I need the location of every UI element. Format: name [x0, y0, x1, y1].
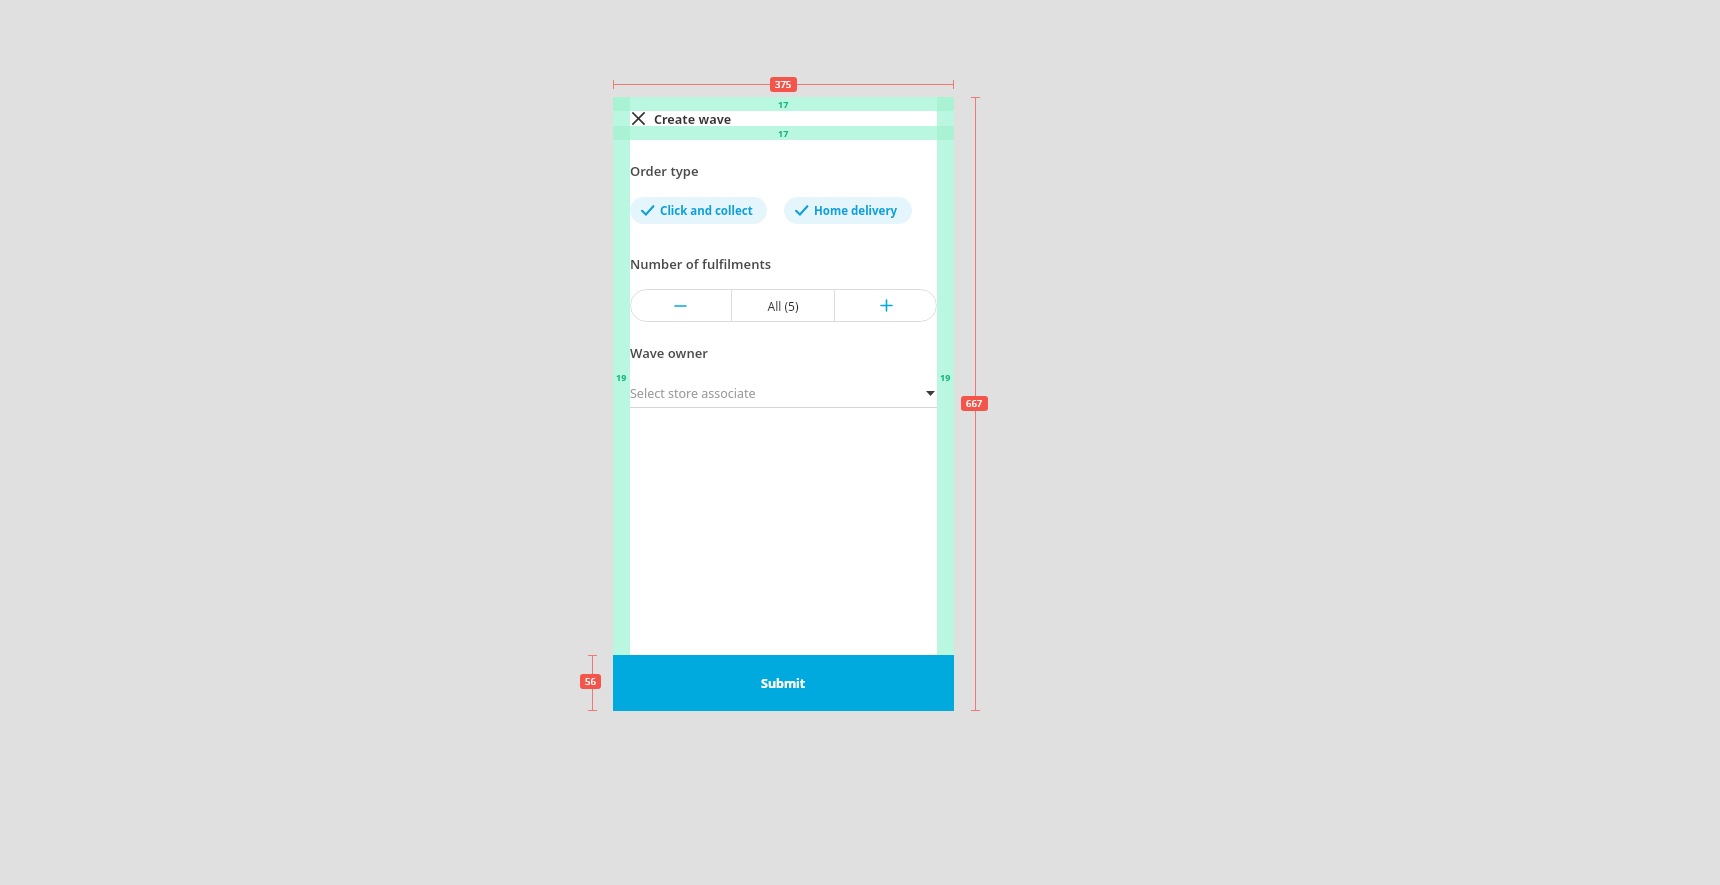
staticText: 17 — [778, 98, 789, 110]
staticText: 19 — [940, 371, 951, 383]
button[interactable]: Increase — [835, 289, 937, 322]
button[interactable]: Home delivery — [784, 197, 912, 224]
staticText: Number of fulfilments — [630, 255, 772, 273]
button[interactable]: Select store associate — [630, 383, 937, 408]
button[interactable]: Decrease — [630, 289, 731, 322]
button[interactable]: All (5) — [732, 289, 834, 322]
staticText: Click and collect — [660, 203, 753, 219]
staticText: 375 — [775, 78, 792, 91]
staticText: 56 — [585, 675, 596, 688]
staticText: Wave owner — [630, 344, 708, 362]
staticText: 19 — [616, 371, 627, 383]
staticText: Create wave — [654, 111, 732, 126]
staticText: 17 — [778, 127, 789, 139]
button[interactable]: Submit — [613, 655, 954, 711]
staticText: 667 — [966, 397, 983, 410]
button[interactable]: Close — [630, 111, 646, 126]
staticText: Home delivery — [814, 203, 898, 219]
staticText: Submit — [761, 675, 806, 692]
staticText: Select store associate — [630, 385, 756, 402]
button[interactable]: Click and collect — [630, 197, 767, 224]
staticText: Order type — [630, 162, 699, 180]
other: Open dropdown — [923, 386, 937, 400]
staticText: All (5) — [767, 298, 799, 314]
